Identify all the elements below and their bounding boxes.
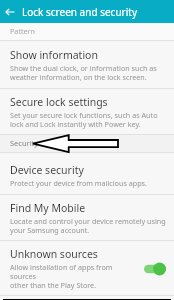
staticText: Protect your device from malicious apps. <box>10 178 147 188</box>
staticText: Pattern <box>10 26 36 36</box>
staticText: Locate and control your device remotely … <box>10 216 166 235</box>
staticText: Find My Mobile <box>10 201 86 215</box>
staticText: Show the dual clock, or information such… <box>10 63 157 82</box>
button[interactable]: Show information <box>0 45 174 88</box>
button[interactable]: Unknown sources toggle <box>144 262 166 276</box>
button[interactable]: Device security <box>0 161 174 194</box>
button[interactable]: Secure lock settings <box>0 93 174 134</box>
button[interactable]: Find My Mobile <box>0 199 174 240</box>
staticText: Security <box>10 138 39 148</box>
staticText: Unknown sources <box>10 247 98 261</box>
staticText: Secure lock settings <box>10 95 108 109</box>
staticText: Lock screen and security <box>22 5 137 19</box>
staticText: Show information <box>10 48 98 62</box>
button[interactable]: Back <box>0 2 20 22</box>
staticText: Allow installation of apps from sources … <box>10 262 140 290</box>
staticText: Set your secure lock functions, such as … <box>10 110 158 129</box>
staticText: Device security <box>10 163 84 177</box>
button[interactable]: Unknown sources <box>0 245 174 295</box>
